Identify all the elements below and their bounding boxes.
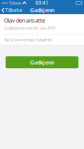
staticText: Olav den ansatte (4, 16, 45, 24)
staticText: Godkjenn timene for juni 2019 (4, 25, 55, 30)
staticText: Skriv kommentar (valgfritt) (4, 37, 51, 42)
staticText: Godkjenn (30, 6, 54, 14)
staticText: Telenor (9, 0, 22, 6)
staticText: Tilbake (5, 7, 22, 13)
staticText: 09:41 (35, 0, 48, 6)
button[interactable]: Godkjenn (6, 56, 78, 68)
button[interactable]: Tilbake (0, 6, 25, 14)
staticText: Godkjenn (30, 59, 54, 66)
button[interactable]: Skriv kommentar (valgfritt) (0, 34, 84, 45)
